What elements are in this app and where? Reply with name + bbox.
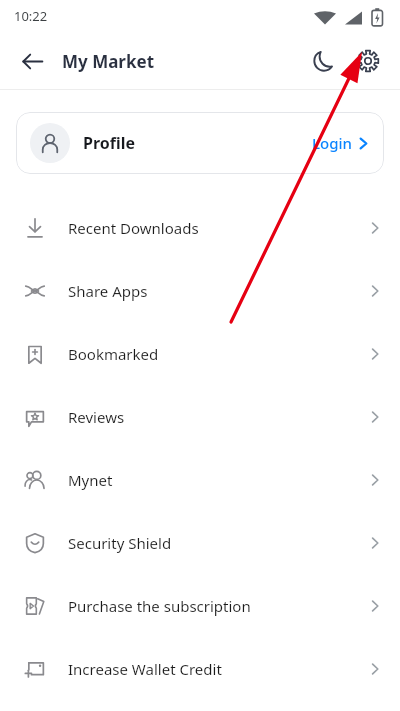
button[interactable]: Security Shield [0, 511, 400, 574]
button[interactable]: Share Apps [0, 259, 400, 322]
button[interactable]: Night mode [302, 39, 346, 83]
staticText: Purchase the subscription [68, 596, 251, 616]
button[interactable]: Increase Wallet Credit [0, 637, 400, 700]
staticText: Security Shield [68, 533, 172, 553]
staticText: Reviews [68, 407, 125, 427]
staticText: Increase Wallet Credit [68, 659, 222, 679]
staticText: Bookmarked [68, 344, 159, 364]
staticText: My Market [62, 50, 155, 73]
button[interactable]: Mynet [0, 448, 400, 511]
button[interactable]: Reviews [0, 385, 400, 448]
staticText: Mynet [68, 470, 113, 490]
button[interactable]: Recent Downloads [0, 196, 400, 259]
button[interactable]: Bookmarked [0, 322, 400, 385]
button[interactable]: Purchase the subscription [0, 574, 400, 637]
staticText: Recent Downloads [68, 218, 199, 238]
button[interactable]: Profile [16, 112, 384, 174]
staticText: Share Apps [68, 281, 148, 301]
staticText: Login [312, 133, 352, 153]
staticText: Profile [83, 132, 136, 154]
button[interactable]: Back [10, 39, 54, 83]
button[interactable]: Settings [346, 39, 390, 83]
staticText: 10:22 [14, 7, 48, 25]
